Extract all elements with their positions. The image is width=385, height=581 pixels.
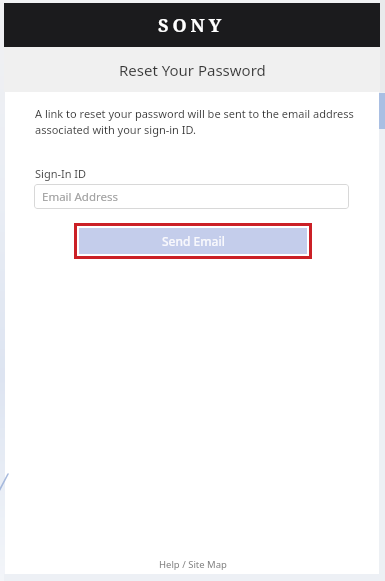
- staticText: A link to reset your password will be se…: [35, 106, 354, 137]
- button[interactable]: Send Email: [79, 228, 307, 254]
- staticText: SONY: [158, 13, 226, 38]
- button[interactable]: Email Address: [34, 184, 349, 209]
- staticText: Sign-In ID: [35, 166, 87, 181]
- button[interactable]: Help / Site Map: [159, 558, 227, 571]
- staticText: Email Address: [42, 189, 119, 205]
- button[interactable]: SONY: [4, 3, 380, 47]
- staticText: Reset Your Password: [119, 60, 266, 80]
- staticText: Send Email: [162, 233, 225, 249]
